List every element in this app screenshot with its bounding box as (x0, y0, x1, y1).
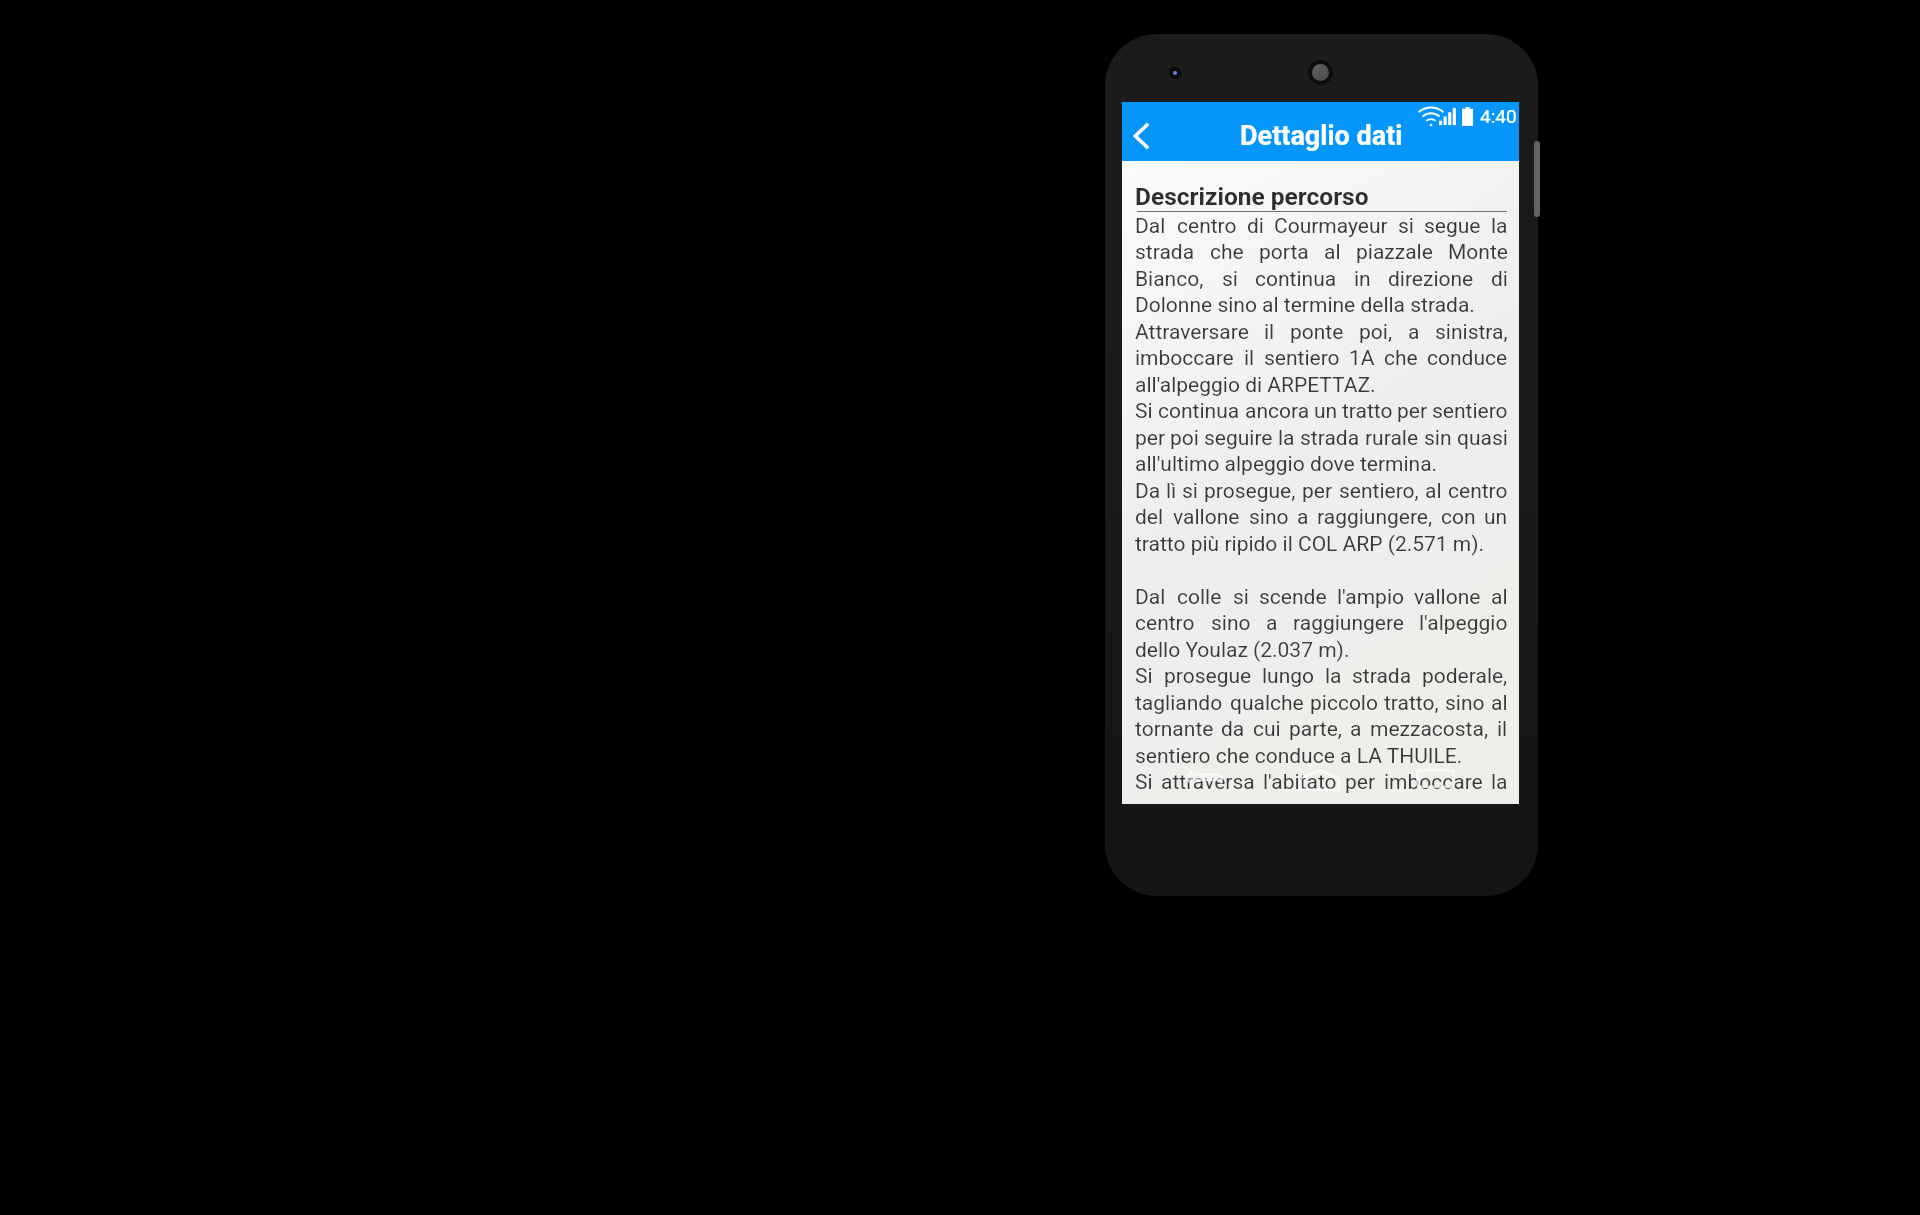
staticText: la (1491, 770, 1508, 795)
staticText: del (1135, 505, 1164, 530)
staticText: da (1221, 717, 1245, 742)
staticText: Descrizione percorso (1135, 182, 1369, 211)
staticText: la (1278, 426, 1295, 451)
staticText: il (1244, 346, 1255, 371)
staticText: che (1210, 240, 1244, 265)
staticText: strada (1352, 664, 1412, 689)
staticText: parte, (1289, 717, 1342, 742)
staticText: a (1266, 611, 1278, 636)
staticText: tagliando (1135, 691, 1223, 716)
staticText: seguire (1204, 426, 1273, 451)
staticText: si (1222, 267, 1238, 292)
staticText: Si (1135, 770, 1153, 795)
staticText: cui (1253, 717, 1281, 742)
staticText: sinistra, (1435, 320, 1508, 345)
staticText: Dal (1135, 214, 1166, 239)
staticText: poderale, (1422, 664, 1508, 689)
staticText: un (1484, 505, 1508, 530)
staticText: per (1397, 399, 1428, 424)
staticText: scende (1259, 585, 1327, 610)
staticText: l'alpeggio (1419, 611, 1508, 636)
staticText: a (1350, 717, 1362, 742)
staticText: strada (1300, 426, 1360, 451)
staticText: segue (1424, 214, 1481, 239)
staticText: colle (1177, 585, 1222, 610)
button[interactable]: Recent apps (1397, 750, 1473, 806)
staticText: porta (1259, 240, 1309, 265)
staticText: il (1264, 320, 1275, 345)
staticText: piccolo (1310, 691, 1378, 716)
staticText: al (1425, 479, 1442, 504)
staticText: ancora (1245, 399, 1310, 424)
staticText: raggiungere (1293, 611, 1404, 636)
staticText: sino (1249, 505, 1289, 530)
staticText: imboccare (1384, 770, 1483, 795)
staticText: Si (1135, 399, 1153, 424)
staticText: con (1441, 505, 1476, 530)
button[interactable]: Home (1280, 751, 1358, 809)
staticText: vallone (1414, 585, 1481, 610)
staticText: Dal (1135, 585, 1166, 610)
staticText: l'ampio (1337, 585, 1404, 610)
staticText: qualche (1230, 691, 1304, 716)
staticText: per (1302, 479, 1333, 504)
staticText: la (1491, 214, 1508, 239)
staticText: per (1135, 426, 1166, 451)
button[interactable]: System back (1166, 750, 1242, 806)
staticText: si (1182, 479, 1198, 504)
staticText: centro (1177, 214, 1237, 239)
staticText: all'alpeggio di ARPETTAZ. (1135, 373, 1376, 398)
staticText: dello Youlaz (2.037 m). (1135, 638, 1350, 663)
staticText: sin (1424, 426, 1452, 451)
staticText: tratto più ripido il COL ARP (2.571 m). (1135, 532, 1485, 557)
staticText: sentiero (1264, 346, 1340, 371)
button[interactable]: Back (1115, 110, 1167, 162)
staticText: si (1398, 214, 1414, 239)
staticText: sino (1445, 691, 1485, 716)
staticText: lì (1166, 479, 1177, 504)
staticText: tornante (1135, 717, 1214, 742)
staticText: continua (1158, 399, 1240, 424)
staticText: poi, (1359, 320, 1393, 345)
staticText: sentiero, (1339, 479, 1419, 504)
staticText: al (1324, 240, 1341, 265)
staticText: di (1491, 267, 1508, 292)
staticText: Bianco, (1135, 267, 1204, 292)
staticText: 1A (1349, 346, 1375, 371)
staticText: tratto (1342, 399, 1393, 424)
staticText: un (1314, 399, 1338, 424)
staticText: Da (1135, 479, 1161, 504)
staticText: centro (1135, 611, 1195, 636)
staticText: che (1384, 346, 1418, 371)
staticText: sentiero che conduce a LA THUILE. (1135, 744, 1463, 769)
staticText: piazzale (1356, 240, 1433, 265)
staticText: rurale (1365, 426, 1419, 451)
staticText: mezzacosta, (1370, 717, 1489, 742)
staticText: prosegue, (1204, 479, 1296, 504)
staticText: Dettaglio dati (1240, 120, 1403, 152)
staticText: quasi (1457, 426, 1508, 451)
staticText: sentiero (1432, 399, 1508, 424)
staticText: tratto, (1384, 691, 1439, 716)
staticText: continua (1255, 267, 1337, 292)
staticText: a (1297, 505, 1309, 530)
staticText: strada (1135, 240, 1195, 265)
staticText: centro (1448, 479, 1508, 504)
staticText: al (1491, 691, 1508, 716)
staticText: attraversa (1161, 770, 1255, 795)
staticText: l'abitato (1263, 770, 1337, 795)
staticText: ponte (1290, 320, 1344, 345)
staticText: 4:40 (1480, 105, 1517, 127)
staticText: vallone (1173, 505, 1240, 530)
staticText: prosegue (1164, 664, 1252, 689)
staticText: la (1325, 664, 1342, 689)
staticText: si (1233, 585, 1249, 610)
staticText: sino (1211, 611, 1251, 636)
staticText: Courmayeur (1274, 214, 1388, 239)
staticText: Dolonne sino al termine della strada. (1135, 293, 1475, 318)
staticText: lungo (1262, 664, 1315, 689)
staticText: in (1354, 267, 1371, 292)
staticText: per (1345, 770, 1376, 795)
staticText: poi (1170, 426, 1199, 451)
staticText: conduce (1427, 346, 1508, 371)
